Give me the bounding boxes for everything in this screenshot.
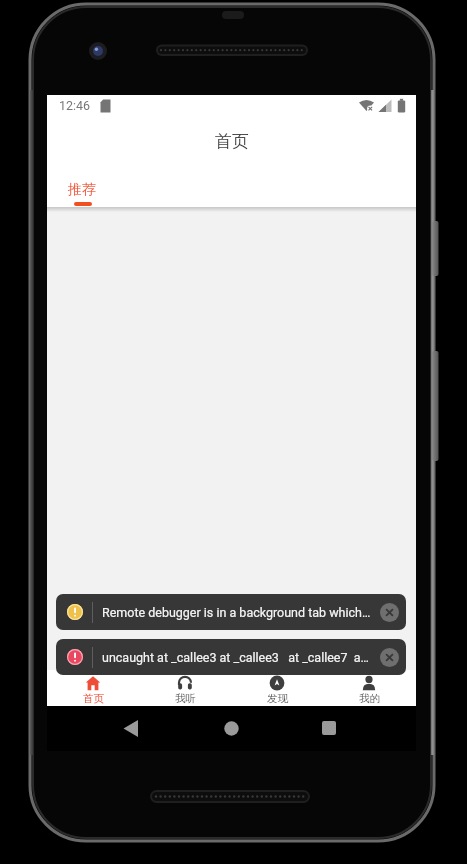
button[interactable]: [380, 648, 399, 667]
staticText: Remote debugger is in a background tab w…: [102, 605, 371, 620]
button[interactable]: [312, 711, 346, 745]
button[interactable]: [113, 711, 147, 745]
staticText: 推荐: [68, 181, 96, 199]
button[interactable]: [214, 711, 248, 745]
button[interactable]: [380, 603, 399, 622]
staticText: uncaught at _callee3 at _callee3 at _cal…: [102, 650, 369, 665]
button[interactable]: uncaught at _callee3 at _callee3 at _cal…: [56, 639, 406, 675]
staticText: 首页: [83, 692, 104, 705]
staticText: 我的: [359, 692, 380, 705]
staticText: 发现: [267, 692, 288, 705]
staticText: 我听: [175, 692, 196, 705]
staticText: 首页: [215, 131, 249, 152]
staticText: 12:46: [59, 98, 91, 113]
button[interactable]: 首页: [47, 670, 139, 706]
button[interactable]: Remote debugger is in a background tab w…: [56, 594, 406, 630]
button[interactable]: 我的: [323, 670, 415, 706]
button[interactable]: 我听: [139, 670, 231, 706]
button[interactable]: 推荐: [59, 172, 105, 207]
button[interactable]: 发现: [231, 670, 323, 706]
